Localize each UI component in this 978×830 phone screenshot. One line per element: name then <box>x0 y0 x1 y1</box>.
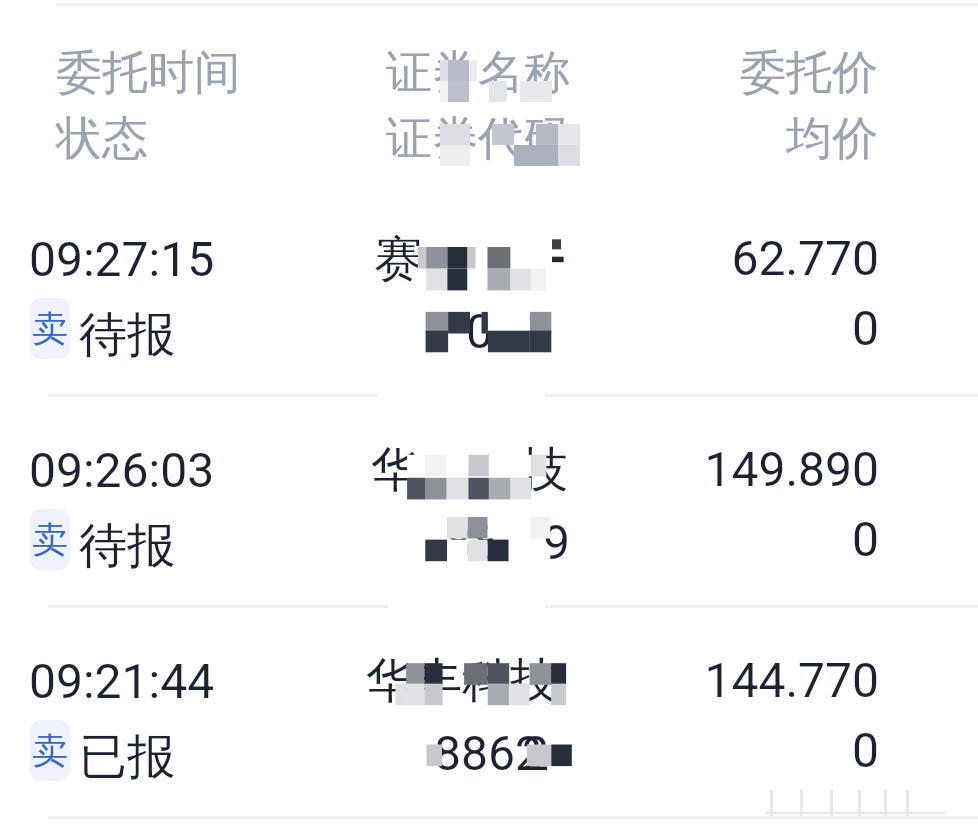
staticText: 均价 <box>278 110 878 168</box>
staticText: 0 <box>279 511 879 567</box>
button[interactable]: 09:26:03 <box>0 396 978 607</box>
staticText: 149.890 <box>279 441 879 497</box>
staticText: 9 <box>543 514 570 570</box>
staticText: 09:26:03 <box>29 442 215 498</box>
staticText: 62.770 <box>279 230 879 286</box>
staticText: 证券代码 <box>386 110 570 168</box>
staticText: 卖 <box>32 517 68 562</box>
staticText: 华丰科技 <box>366 651 558 711</box>
button[interactable]: 09:27:15 <box>0 185 978 396</box>
staticText: 0 <box>279 300 879 356</box>
staticText: 状态 <box>56 110 148 168</box>
staticText: 待报 <box>79 305 175 365</box>
staticText: 88 <box>445 514 499 570</box>
staticText: 委托时间 <box>56 44 240 102</box>
staticText: 8862 <box>434 725 542 781</box>
staticText: 卖 <box>32 728 68 773</box>
staticText: 华 <box>371 440 419 500</box>
button[interactable]: 09:21:44 <box>0 607 978 818</box>
staticText: 011 <box>466 303 547 359</box>
staticText: 已报 <box>79 727 175 787</box>
staticText: 144.770 <box>279 652 879 708</box>
staticText: 09:21:44 <box>29 653 215 709</box>
staticText: 0 <box>279 722 879 778</box>
staticText: 委托价 <box>278 44 878 102</box>
staticText: 2 <box>522 725 549 781</box>
staticText: 赛 <box>374 229 422 289</box>
staticText: 09:27:15 <box>29 231 215 287</box>
staticText: 待报 <box>79 516 175 576</box>
staticText: 证券名称 <box>386 44 570 102</box>
staticText: 技 <box>520 440 568 500</box>
staticText: 卖 <box>32 306 68 351</box>
